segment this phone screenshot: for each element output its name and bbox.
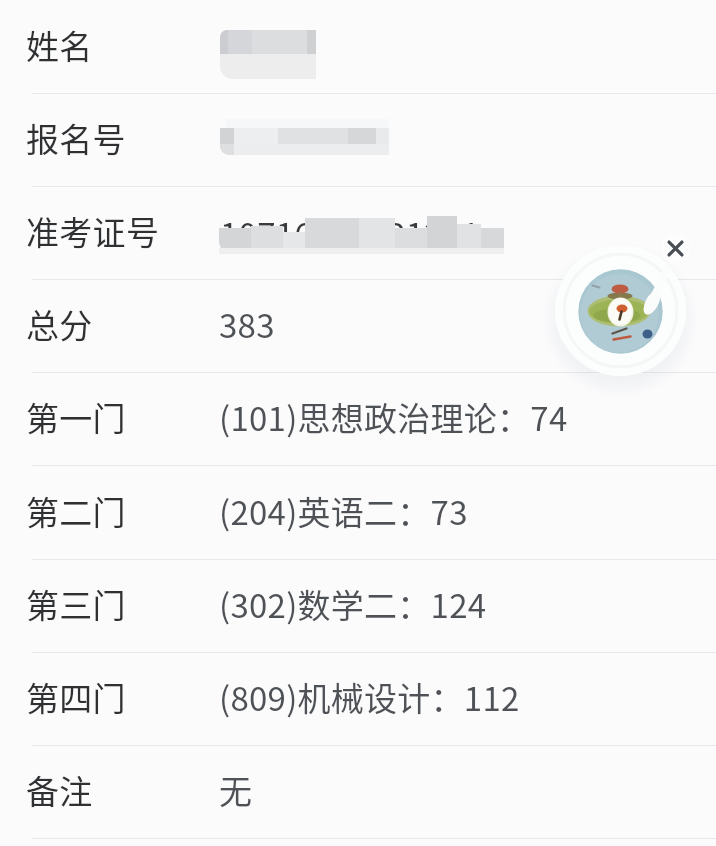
staticText: 383 [219, 300, 275, 348]
staticText: 报名号 [26, 114, 126, 162]
staticText: 第二门 [26, 487, 126, 535]
button[interactable]: 第四门 [0, 653, 716, 746]
button[interactable]: Close [661, 234, 690, 263]
button[interactable]: 第二门 [0, 467, 716, 560]
staticText: 10716000131201 [220, 209, 481, 257]
button[interactable]: 姓名 [0, 1, 716, 94]
button[interactable]: 总分 [0, 280, 716, 373]
staticText: (302)数学二：124 [219, 580, 487, 628]
staticText: (809)机械设计：112 [219, 673, 520, 721]
staticText: 总分 [26, 300, 93, 348]
button[interactable]: 第三门 [0, 560, 716, 653]
staticText: 第一门 [26, 393, 126, 441]
staticText: 备注 [26, 766, 93, 814]
staticText: (101)思想政治理论：74 [219, 393, 568, 441]
button[interactable]: Advertisement [555, 245, 686, 376]
staticText: 无 [219, 766, 253, 814]
staticText: (204)英语二：73 [219, 487, 468, 535]
staticText: 准考证号 [26, 207, 160, 255]
button[interactable]: 备注 [0, 746, 716, 839]
button[interactable]: 第一门 [0, 373, 716, 466]
staticText: 第三门 [26, 580, 126, 628]
button[interactable]: 报名号 [0, 94, 716, 187]
staticText: 姓名 [26, 21, 93, 69]
staticText: 第四门 [26, 673, 126, 721]
button[interactable]: 准考证号 [0, 187, 716, 280]
